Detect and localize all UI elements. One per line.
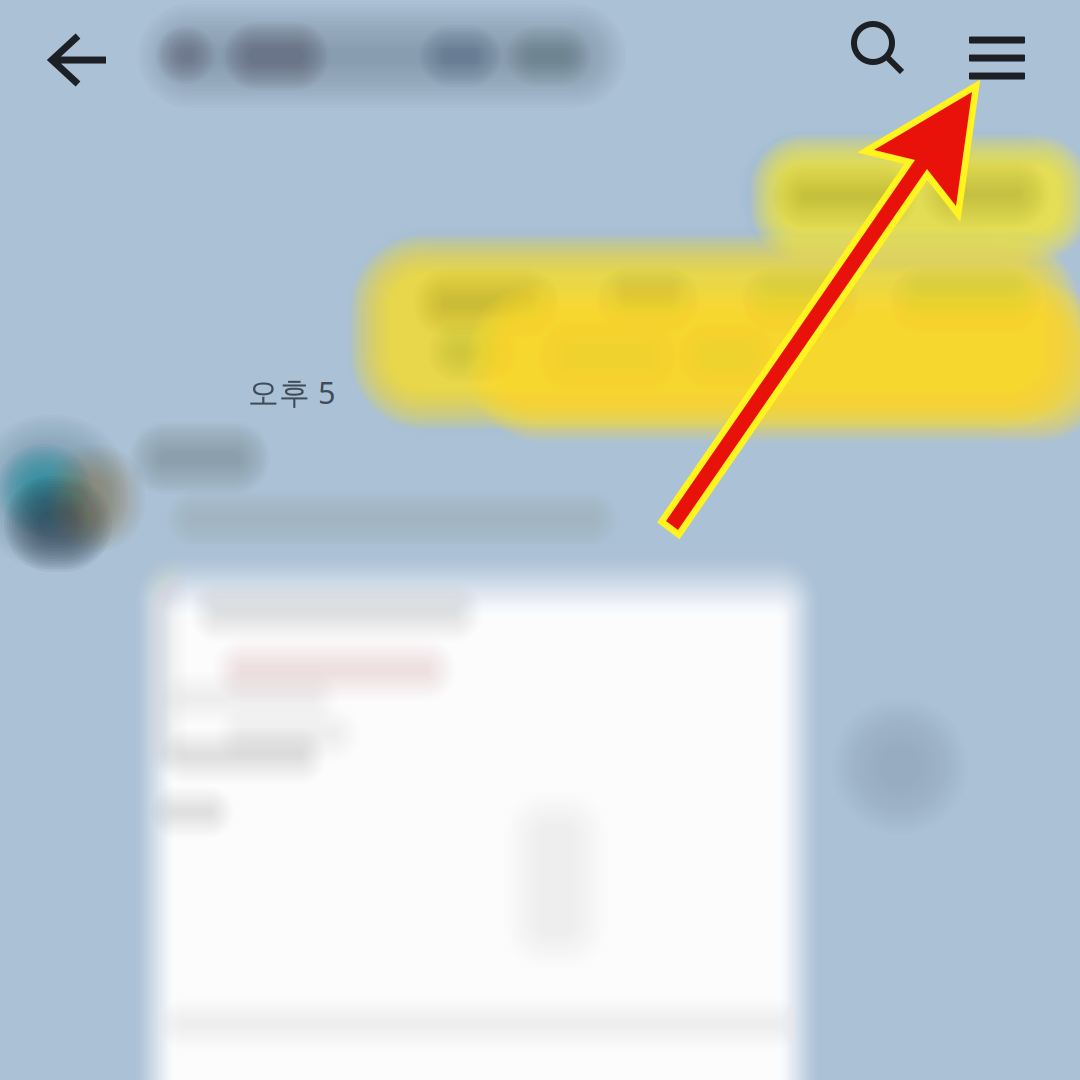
button[interactable]: Menu (949, 10, 1045, 106)
button[interactable]: Back (22, 10, 142, 110)
staticText: 오후 5 (248, 371, 336, 413)
button[interactable]: Search (833, 8, 933, 108)
